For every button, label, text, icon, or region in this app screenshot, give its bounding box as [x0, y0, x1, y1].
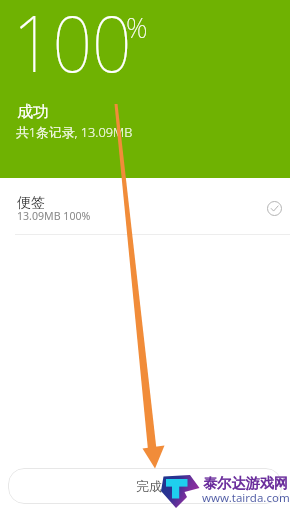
- button[interactable]: 完成: [8, 468, 282, 504]
- staticText: 共1条记录, 13.09MB: [16, 123, 133, 140]
- staticText: 泰尔达游戏网: [203, 474, 289, 492]
- staticText: 便签: [17, 194, 45, 212]
- staticText: 成功: [17, 102, 49, 122]
- staticText: 100: [13, 0, 132, 95]
- button[interactable]: 便签: [0, 179, 290, 235]
- staticText: %: [126, 9, 148, 46]
- staticText: 完成: [136, 478, 162, 494]
- staticText: 13.09MB 100%: [17, 209, 91, 223]
- staticText: www.tairda.com: [202, 490, 290, 506]
- other: Completed: [259, 193, 289, 223]
